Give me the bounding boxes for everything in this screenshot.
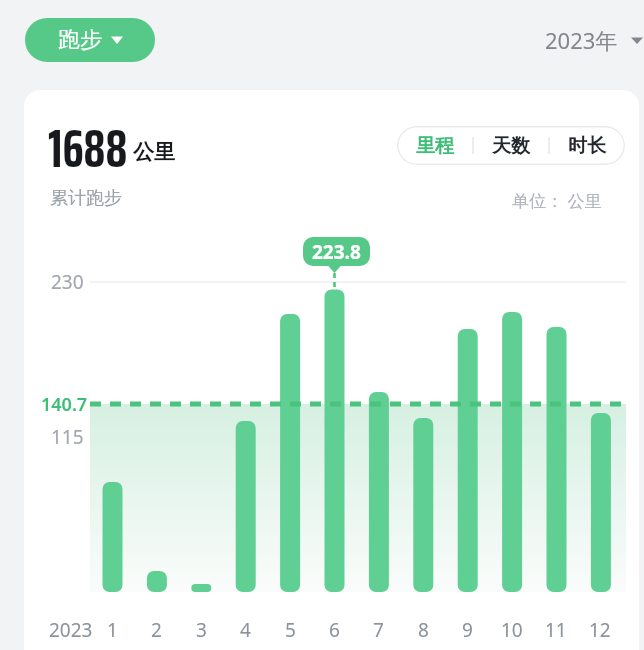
staticText: 10 — [501, 617, 523, 643]
staticText: 7 — [373, 617, 384, 643]
staticText: 5 — [285, 617, 296, 643]
staticText: 公里 — [133, 139, 175, 165]
staticText: 1 — [107, 617, 118, 643]
button[interactable]: 跑步 — [25, 18, 155, 62]
staticText: 时长 — [568, 134, 606, 158]
staticText: 4 — [240, 617, 251, 643]
staticText: 11 — [545, 617, 567, 643]
staticText: 累计跑步 — [50, 187, 122, 210]
staticText: 2023 — [49, 617, 93, 643]
staticText: 跑步 — [58, 26, 102, 54]
staticText: 140.7 — [41, 392, 88, 417]
staticText: 12 — [589, 617, 611, 643]
button[interactable]: 里程 — [397, 126, 473, 165]
button[interactable]: 时长 — [549, 126, 625, 165]
staticText: 223.8 — [312, 239, 361, 265]
staticText: 单位： 公里 — [512, 189, 602, 212]
staticText: 9 — [462, 617, 473, 643]
staticText: 2023年 — [545, 25, 618, 55]
staticText: 里程 — [416, 134, 454, 158]
staticText: 1688 — [48, 106, 128, 188]
staticText: 230 — [51, 269, 84, 295]
staticText: 2 — [151, 617, 162, 643]
staticText: 115 — [51, 424, 84, 450]
staticText: 6 — [329, 617, 340, 643]
button[interactable]: 天数 — [473, 126, 549, 165]
staticText: 8 — [418, 617, 429, 643]
staticText: 3 — [196, 617, 207, 643]
staticText: 天数 — [492, 134, 530, 158]
button[interactable]: 2023年 — [545, 22, 644, 58]
